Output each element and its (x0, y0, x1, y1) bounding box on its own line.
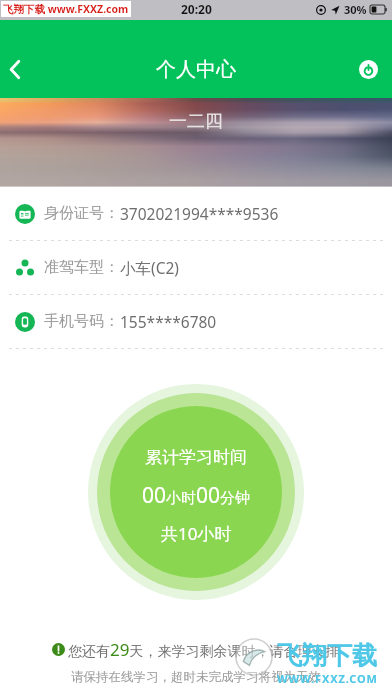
staticText: 155****6780 (120, 311, 217, 332)
button[interactable]: 准驾车型 (0, 241, 392, 294)
staticText: 飞翔下载 www.FXXZ.com (3, 2, 129, 16)
staticText: 飞翔下载 (277, 640, 377, 671)
staticText: ： (104, 204, 119, 223)
staticText: 请保持在线学习，超时未完成学习将视为无效 (71, 669, 321, 685)
button[interactable]: Back (0, 47, 30, 91)
staticText: WWW.FXXZ.COM (277, 671, 378, 686)
staticText: 20:20 (181, 1, 212, 17)
staticText: 准驾车型 (44, 258, 104, 277)
staticText: 个人中心 (156, 57, 236, 82)
staticText: 小车(C2) (120, 257, 179, 278)
button[interactable]: Power off (351, 52, 385, 86)
staticText: 共10小时 (161, 522, 232, 545)
staticText: 00小时00分钟 (142, 481, 251, 510)
button[interactable]: 身份证号 (0, 187, 392, 240)
staticText: 您还有29天，来学习剩余课时，请合理安排 (68, 638, 340, 661)
staticText: ： (104, 312, 119, 331)
button[interactable]: 手机号码 (0, 295, 392, 348)
staticText: 一二四 (169, 110, 223, 133)
staticText: 30% (344, 2, 367, 17)
staticText: 3702021994****9536 (120, 203, 279, 224)
staticText: ： (104, 258, 119, 277)
staticText: 身份证号 (44, 204, 104, 223)
staticText: 累计学习时间 (145, 447, 247, 468)
button[interactable]: 累计学习时间 (110, 406, 282, 578)
staticText: 手机号码 (44, 312, 104, 331)
